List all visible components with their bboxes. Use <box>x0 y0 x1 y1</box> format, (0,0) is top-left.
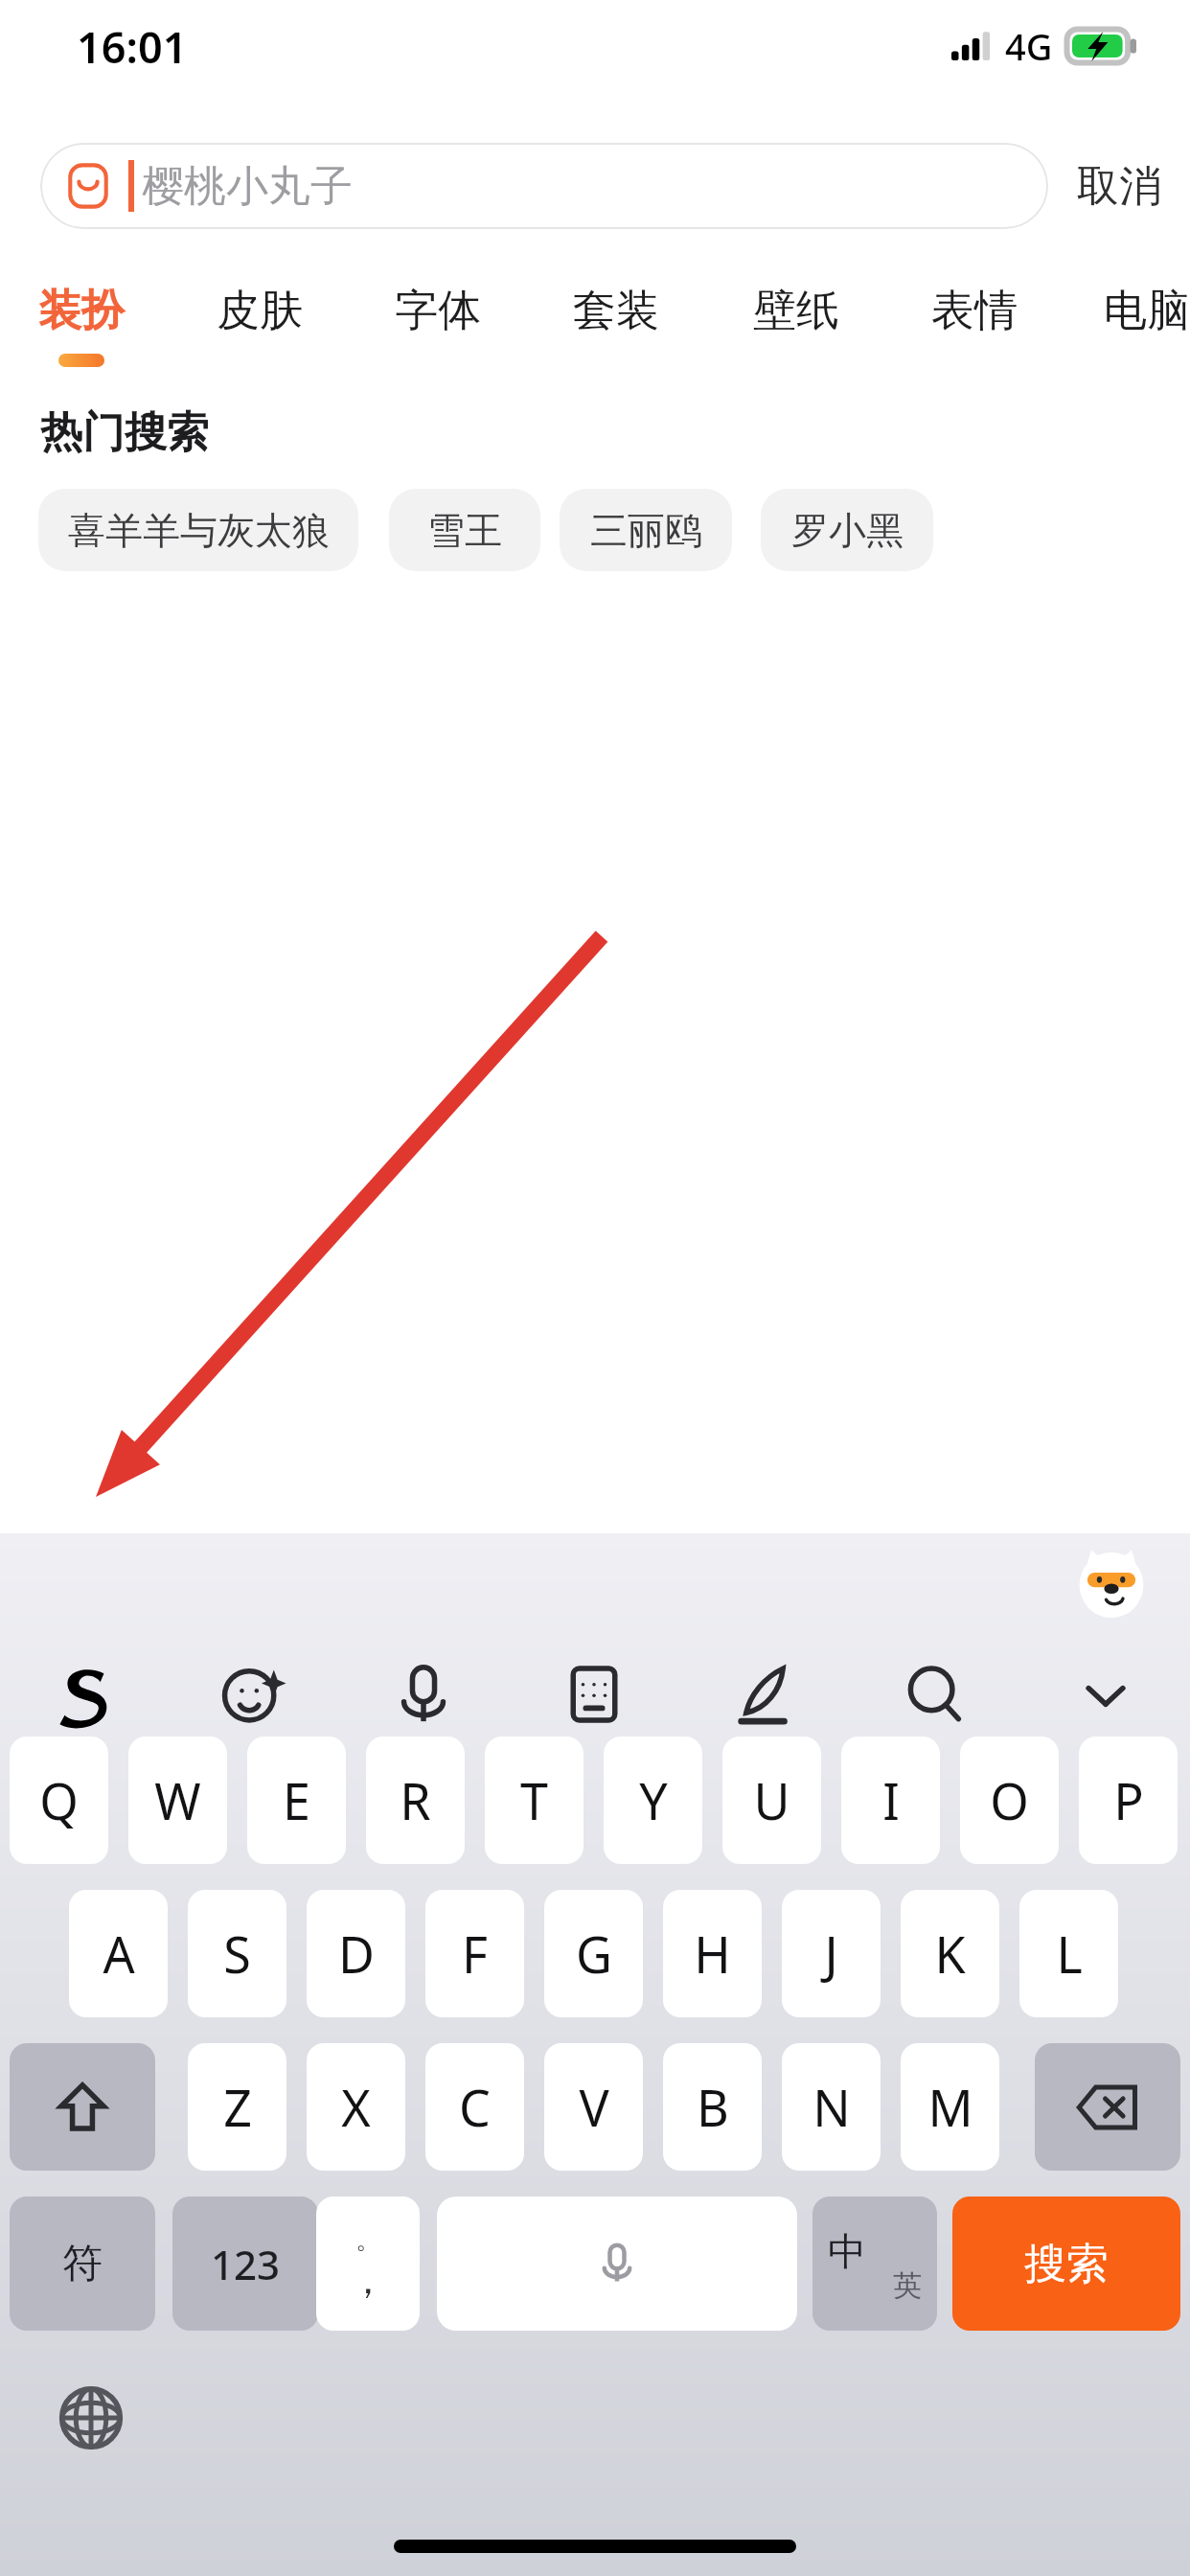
staticText: 皮肤 <box>217 284 303 338</box>
staticText: 4G <box>1005 21 1053 71</box>
button[interactable]: A <box>69 1890 168 2017</box>
button[interactable]: I <box>841 1736 940 1864</box>
button[interactable]: Voice input <box>381 1652 466 1736</box>
staticText: Q <box>39 1766 79 1834</box>
button[interactable]: 中 <box>812 2196 937 2331</box>
staticText: 装扮 <box>38 284 125 338</box>
staticText: R <box>400 1766 431 1834</box>
staticText: M <box>927 2073 973 2141</box>
staticText: 16:01 <box>77 17 188 76</box>
staticText: 字体 <box>395 284 481 338</box>
staticText: 取消 <box>1077 160 1161 213</box>
button[interactable]: Z <box>188 2043 286 2171</box>
staticText: 壁纸 <box>753 284 839 338</box>
button[interactable]: 装扮 <box>38 284 125 367</box>
button[interactable]: Search <box>893 1652 977 1736</box>
button[interactable]: 樱桃小丸子 <box>40 143 1048 229</box>
staticText: O <box>990 1766 1029 1834</box>
button[interactable]: F <box>425 1890 524 2017</box>
button[interactable]: Hide keyboard <box>1064 1652 1148 1736</box>
button[interactable]: P <box>1079 1736 1178 1864</box>
button[interactable]: Keyboard layout <box>552 1652 636 1736</box>
button[interactable]: H <box>663 1890 762 2017</box>
staticText: X <box>341 2073 371 2141</box>
button[interactable]: 取消 <box>1048 142 1190 230</box>
staticText: 雪王 <box>427 507 502 554</box>
button[interactable]: 字体 <box>395 284 481 338</box>
staticText: 喜羊羊与灰太狼 <box>68 507 330 554</box>
button[interactable]: T <box>485 1736 584 1864</box>
button[interactable]: 表情 <box>931 284 1018 338</box>
staticText: 中 <box>828 2227 866 2275</box>
button[interactable]: N <box>782 2043 881 2171</box>
button[interactable]: W <box>128 1736 227 1864</box>
staticText: T <box>520 1766 548 1834</box>
button[interactable]: G <box>544 1890 643 2017</box>
button[interactable]: 壁纸 <box>753 284 839 338</box>
button[interactable]: O <box>960 1736 1059 1864</box>
button[interactable]: Backspace <box>1035 2043 1180 2171</box>
button[interactable]: 罗小黑 <box>761 489 933 571</box>
button[interactable]: S <box>188 1890 286 2017</box>
button[interactable]: J <box>782 1890 881 2017</box>
staticText: 樱桃小丸子 <box>142 160 353 213</box>
button[interactable]: R <box>366 1736 465 1864</box>
staticText: 套装 <box>573 284 659 338</box>
button[interactable]: 符 <box>10 2196 155 2331</box>
staticText: B <box>697 2073 729 2141</box>
button[interactable]: B <box>663 2043 762 2171</box>
staticText: 表情 <box>931 284 1018 338</box>
button[interactable]: 套装 <box>573 284 659 338</box>
staticText: V <box>579 2073 609 2141</box>
button[interactable]: Sogou <box>42 1652 126 1736</box>
button[interactable]: D <box>307 1890 405 2017</box>
button[interactable]: M <box>901 2043 999 2171</box>
staticText: 罗小黑 <box>791 507 904 554</box>
staticText: 三丽鸥 <box>590 507 702 554</box>
staticText: 热门搜索 <box>40 406 209 459</box>
button[interactable]: 搜索 <box>952 2196 1180 2331</box>
staticText: I <box>882 1766 900 1834</box>
staticText: D <box>338 1920 375 1988</box>
button[interactable]: Y <box>604 1736 702 1864</box>
staticText: P <box>1113 1766 1144 1834</box>
button[interactable]: 喜羊羊与灰太狼 <box>38 489 358 571</box>
staticText: 电脑主 <box>1104 284 1190 338</box>
button[interactable]: U <box>722 1736 821 1864</box>
staticText: 搜索 <box>1024 2238 1109 2290</box>
button[interactable]: X <box>307 2043 405 2171</box>
button[interactable]: Switch language <box>42 2369 140 2467</box>
button[interactable]: L <box>1019 1890 1118 2017</box>
button[interactable]: 三丽鸥 <box>560 489 732 571</box>
staticText: K <box>934 1920 966 1988</box>
button[interactable]: 。 <box>316 2196 420 2331</box>
staticText: L <box>1056 1920 1083 1988</box>
staticText: A <box>103 1920 135 1988</box>
button[interactable]: Q <box>10 1736 108 1864</box>
button[interactable]: C <box>425 2043 524 2171</box>
staticText: C <box>459 2073 491 2141</box>
staticText: E <box>283 1766 310 1834</box>
staticText: 123 <box>211 2237 281 2291</box>
staticText: G <box>576 1920 612 1988</box>
button[interactable]: E <box>247 1736 346 1864</box>
button[interactable]: 123 <box>172 2196 318 2331</box>
button[interactable]: Shift <box>10 2043 155 2171</box>
staticText: W <box>154 1766 201 1834</box>
staticText: Y <box>639 1766 668 1834</box>
staticText: 。 <box>355 2224 380 2256</box>
button[interactable]: Emoji <box>211 1652 295 1736</box>
button[interactable]: K <box>901 1890 999 2017</box>
staticText: S <box>223 1920 251 1988</box>
staticText: U <box>753 1766 790 1834</box>
staticText: 英 <box>893 2267 922 2304</box>
button[interactable]: V <box>544 2043 643 2171</box>
button[interactable]: Space, voice input <box>437 2196 797 2331</box>
button[interactable]: 皮肤 <box>217 284 303 338</box>
button[interactable]: 电脑主 <box>1104 284 1190 338</box>
button[interactable]: 雪王 <box>389 489 540 571</box>
staticText: F <box>462 1920 488 1988</box>
button[interactable]: Assistant <box>1067 1541 1156 1629</box>
button[interactable]: Handwriting <box>722 1652 807 1736</box>
staticText: N <box>812 2073 851 2141</box>
